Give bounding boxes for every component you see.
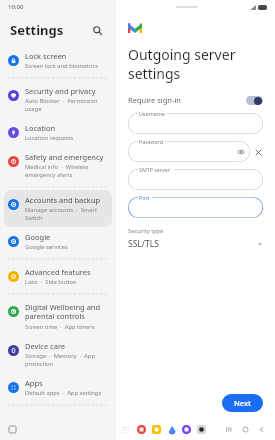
staticText: Security and privacy — [25, 86, 96, 96]
staticText: Location — [25, 123, 56, 133]
staticText: Screen time · App timers — [25, 323, 95, 331]
button[interactable]: home — [237, 421, 253, 437]
staticText: Google services — [25, 243, 68, 251]
button[interactable]: Clear — [253, 147, 263, 157]
staticText: Safety and emergency — [25, 152, 104, 162]
button[interactable]: Lock screen — [4, 46, 112, 75]
staticText: Manage accounts · Smart Switch — [25, 206, 106, 222]
staticText: Auto Blocker · Permission usage — [25, 97, 106, 113]
staticText: Next — [234, 398, 251, 408]
button[interactable]: Security and privacy — [4, 81, 112, 118]
button[interactable]: Recent — [7, 424, 17, 434]
button[interactable]: App — [181, 424, 192, 435]
staticText: Location requests — [25, 134, 74, 142]
button[interactable]: Google — [4, 227, 112, 256]
button[interactable]: Location — [4, 118, 112, 147]
button[interactable]: App — [196, 424, 207, 435]
staticText: Advanced features — [25, 267, 91, 277]
staticText: Default apps · App settings — [25, 389, 102, 397]
staticText: Accounts and backup — [25, 195, 101, 205]
button[interactable]: All apps — [120, 424, 131, 435]
button[interactable]: Digital Wellbeing and parental controls — [4, 297, 112, 336]
button[interactable]: Apps — [4, 373, 112, 402]
staticText: 10:00 — [8, 3, 24, 11]
button[interactable]: SSL/TLS — [128, 238, 263, 250]
staticText: Outgoing server settings — [128, 45, 263, 83]
button[interactable]: Advanced features — [4, 262, 112, 291]
button[interactable] — [128, 197, 263, 218]
button[interactable]: back — [253, 421, 269, 437]
button[interactable]: Accounts and backup — [4, 190, 112, 227]
button[interactable] — [128, 113, 263, 134]
button[interactable]: Search — [88, 21, 106, 39]
staticText: SMTP server — [139, 166, 170, 173]
staticText: Port — [139, 194, 150, 201]
button[interactable]: Require sign-in — [128, 95, 263, 105]
staticText: Medical info · Wireless emergency alerts — [25, 163, 106, 179]
staticText: Password — [139, 138, 163, 145]
staticText: Storage · Memory · App protection — [25, 352, 106, 368]
button[interactable]: Device care — [4, 336, 112, 373]
button[interactable]: App — [166, 424, 177, 435]
staticText: Device care — [25, 341, 66, 351]
button[interactable]: Next — [222, 394, 263, 412]
button[interactable]: App — [136, 424, 147, 435]
staticText: Labs · Side button — [25, 278, 77, 286]
staticText: Lock screen — [25, 51, 67, 61]
button[interactable]: Show password — [128, 141, 250, 162]
staticText: Screen lock and biometrics — [25, 62, 98, 70]
staticText: Apps — [25, 378, 43, 388]
button[interactable]: Safety and emergency — [4, 147, 112, 184]
staticText: SSL/TLS — [128, 238, 159, 250]
button[interactable]: recents — [221, 421, 237, 437]
staticText: Digital Wellbeing and parental controls — [25, 302, 106, 322]
button[interactable]: Show password — [237, 148, 244, 155]
button[interactable] — [128, 169, 263, 190]
button[interactable]: App — [151, 424, 162, 435]
staticText: Username — [139, 110, 165, 117]
staticText: Security type — [128, 227, 164, 235]
staticText: Settings — [10, 21, 64, 39]
staticText: Google — [25, 232, 51, 242]
staticText: Require sign-in — [128, 95, 181, 105]
